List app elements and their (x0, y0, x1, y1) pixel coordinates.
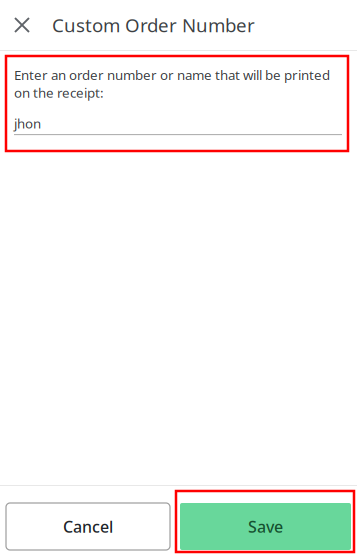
button[interactable]: Close (6, 9, 38, 40)
staticText: Cancel (63, 516, 113, 537)
staticText: jhon (14, 114, 41, 132)
button[interactable]: Save (176, 491, 354, 552)
button[interactable]: Cancel (6, 503, 170, 550)
staticText: Save (248, 516, 283, 537)
staticText: Custom Order Number (52, 13, 255, 37)
staticText: Enter an order number or name that will … (14, 66, 330, 101)
